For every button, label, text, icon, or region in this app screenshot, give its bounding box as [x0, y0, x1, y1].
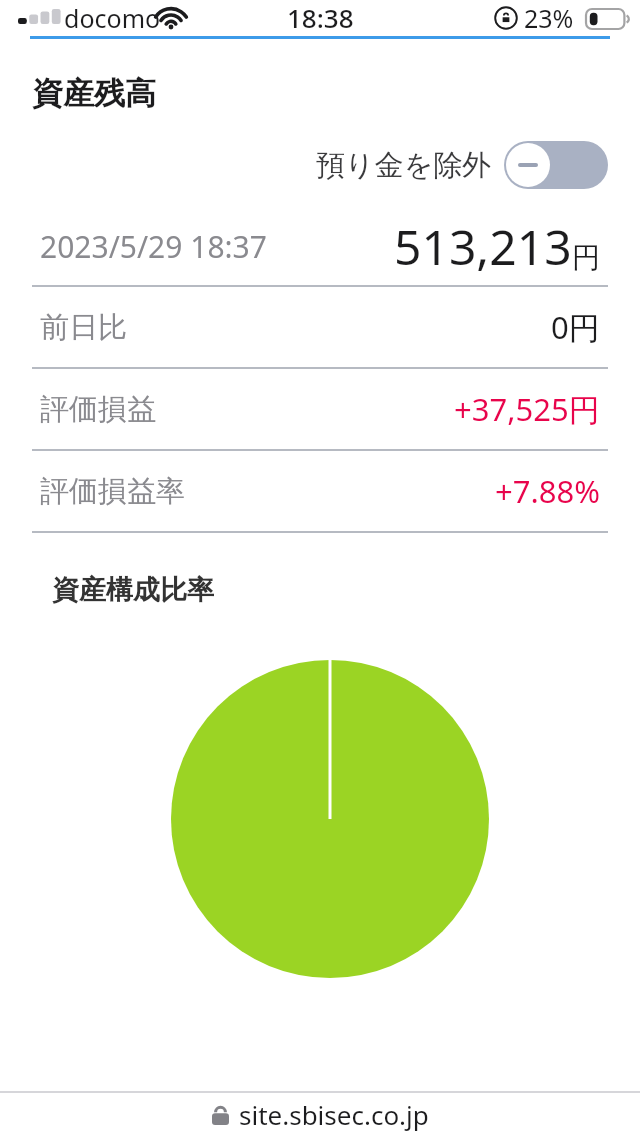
staticText: 資産構成比率: [52, 573, 214, 607]
button[interactable]: 評価損益: [0, 369, 640, 449]
button[interactable]: 預り金を除外: [312, 137, 612, 193]
staticText: 18:38: [287, 0, 354, 32]
staticText: 513,213: [394, 214, 572, 279]
button[interactable]: 前日比: [0, 287, 640, 367]
staticText: 評価損益率: [40, 473, 185, 510]
staticText: docomo: [64, 1, 161, 33]
button[interactable]: 評価損益率: [0, 451, 640, 531]
staticText: 23%: [524, 1, 574, 33]
staticText: 円: [572, 240, 600, 275]
other: Exclude deposits toggle: [504, 141, 608, 189]
staticText: 資産残高: [32, 74, 156, 113]
staticText: 預り金を除外: [316, 147, 492, 184]
staticText: 前日比: [40, 309, 127, 346]
staticText: site.sbisec.co.jp: [239, 1097, 429, 1132]
staticText: 0円: [551, 306, 600, 348]
staticText: 評価損益: [40, 391, 156, 428]
staticText: +37,525円: [454, 388, 600, 430]
staticText: +7.88%: [495, 470, 600, 512]
button[interactable]: site.sbisec.co.jp: [0, 1093, 640, 1136]
staticText: 2023/5/29 18:37: [40, 226, 267, 267]
